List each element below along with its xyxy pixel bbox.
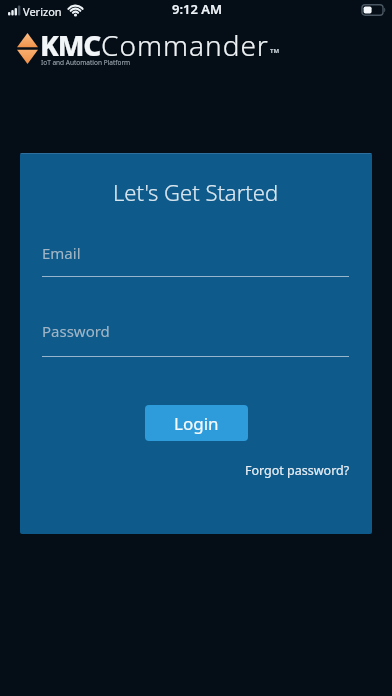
staticText: Let's Get Started	[113, 177, 279, 207]
staticText: Email	[42, 243, 81, 263]
staticText: TM	[270, 47, 280, 55]
staticText: KMC	[40, 26, 101, 64]
button[interactable]: Email	[42, 243, 349, 277]
button[interactable]: Forgot password?	[245, 462, 350, 479]
button[interactable]: Password	[42, 321, 349, 357]
staticText: Forgot password?	[245, 462, 350, 479]
staticText: Login	[174, 412, 219, 435]
staticText: Password	[42, 321, 110, 341]
staticText: 9:12 AM	[172, 0, 223, 18]
staticText: Verizon	[23, 4, 62, 19]
staticText: Commander	[101, 26, 269, 64]
button[interactable]: Login	[145, 405, 248, 441]
staticText: IoT and Automation Platform	[41, 58, 131, 67]
